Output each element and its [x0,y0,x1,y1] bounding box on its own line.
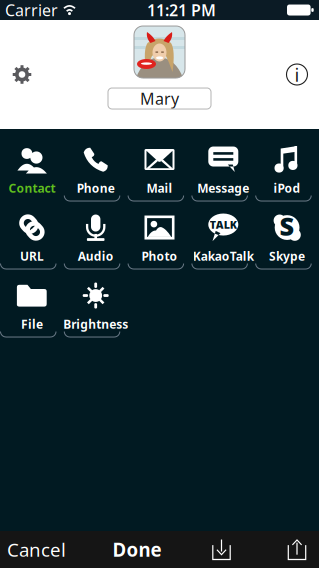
button[interactable]: Mail [128,134,191,202]
staticText: URL [20,248,44,264]
staticText: Done [112,537,161,562]
button[interactable]: Share [280,531,314,567]
staticText: Audio [78,248,114,264]
button[interactable]: S [255,202,319,270]
staticText: iPod [274,180,301,196]
staticText: Cancel [7,537,66,562]
button[interactable]: Mary [108,88,211,109]
button[interactable]: Save [200,531,243,567]
staticText: KakaoTalk [193,248,254,264]
button[interactable]: Profile photo [132,25,186,79]
staticText: i [294,62,299,87]
button[interactable]: Info [279,54,315,94]
staticText: Photo [141,248,177,264]
staticText: Brightness [63,316,128,332]
button[interactable]: Brightness [64,270,128,338]
button[interactable]: URL [0,202,64,270]
button[interactable]: TALK [191,202,255,270]
staticText: S [280,209,295,243]
staticText: 11:21 PM [147,0,216,21]
button[interactable]: Done [106,531,168,567]
staticText: Mail [146,180,172,196]
button[interactable]: Phone [64,134,128,202]
button[interactable]: Contact [0,134,64,202]
staticText: File [21,316,43,332]
button[interactable]: Cancel [5,531,68,567]
staticText: Contact [8,180,55,196]
button[interactable]: Settings [4,54,40,94]
staticText: TALK [210,217,237,232]
staticText: Carrier [5,0,58,21]
staticText: Message [197,180,249,196]
button[interactable]: iPod [255,134,319,202]
staticText: Skype [269,248,305,264]
staticText: Mary [140,88,179,109]
button[interactable]: Audio [64,202,128,270]
button[interactable]: File [0,270,64,338]
staticText: Phone [77,180,115,196]
button[interactable]: Photo [128,202,191,270]
button[interactable]: Message [191,134,255,202]
